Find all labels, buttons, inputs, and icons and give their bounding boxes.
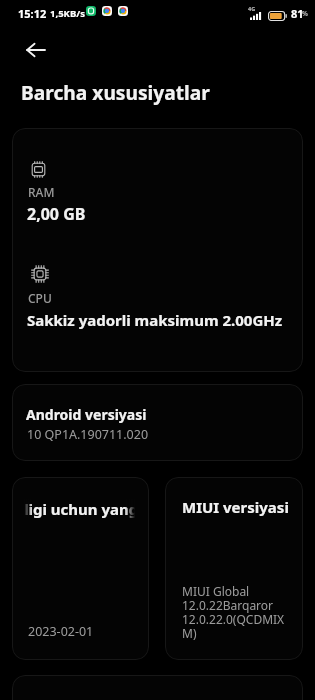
- staticText: %: [302, 9, 308, 18]
- staticText: 2,00 GB: [27, 203, 86, 225]
- staticText: 15:12: [18, 6, 47, 21]
- staticText: 81: [291, 6, 304, 21]
- staticText: MIUI Global 12.0.22Barqaror 12.0.22.0(QC…: [182, 583, 285, 641]
- staticText: 10 QP1A.190711.020: [27, 426, 149, 443]
- button[interactable]: RAM: [12, 128, 303, 372]
- button[interactable]: Back: [14, 28, 57, 71]
- staticText: ligi uchun yangi: [24, 499, 143, 518]
- button[interactable]: MIUI versiyasi: [165, 477, 303, 660]
- button[interactable]: [12, 675, 303, 700]
- staticText: Sakkiz yadorli maksimum 2.00GHz: [27, 310, 283, 330]
- button[interactable]: Android versiyasi: [12, 384, 303, 461]
- staticText: 2023-02-01: [28, 623, 94, 640]
- staticText: MIUI versiyasi: [182, 497, 289, 517]
- staticText: CPU: [28, 290, 52, 306]
- staticText: 1,5KB/s: [50, 7, 85, 20]
- staticText: RAM: [28, 184, 55, 200]
- staticText: Barcha xususiyatlar: [21, 79, 210, 105]
- staticText: 4G: [248, 5, 256, 12]
- button[interactable]: ligi uchun yangi: [12, 477, 149, 660]
- staticText: Android versiyasi: [26, 405, 147, 424]
